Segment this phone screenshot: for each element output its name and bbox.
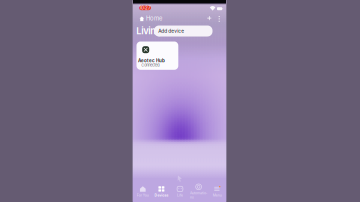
button[interactable]: For You [134,183,152,199]
button[interactable]: Menu [208,183,226,199]
staticText: Automations [190,191,207,199]
staticText: Devices [154,193,168,197]
button[interactable]: Add [207,16,211,20]
staticText: Connected [141,63,159,67]
button[interactable]: More options [219,16,220,21]
button[interactable]: Automations [189,183,208,199]
button[interactable]: Life [171,183,189,199]
staticText: Life [177,193,183,197]
staticText: Menu [213,193,222,197]
button[interactable]: Devices [152,183,171,199]
staticText: Add device [158,28,184,34]
staticText: Home [146,15,162,22]
button[interactable]: Aeotec Hub [136,41,178,70]
staticText: Aeotec Hub [138,58,165,63]
staticText: For You [137,193,149,197]
button[interactable]: Add device [154,25,212,36]
button[interactable]: Home [146,15,170,21]
staticText: 10:27 [139,5,151,11]
staticText: Living Room [136,25,190,37]
